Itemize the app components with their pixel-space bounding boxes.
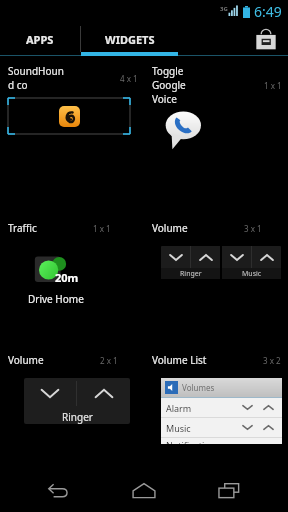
staticText: Volume (152, 221, 188, 235)
staticText: Volume (8, 353, 44, 367)
staticText: 6:49 (254, 2, 282, 21)
button[interactable] (222, 246, 251, 268)
button[interactable]: Shop (244, 22, 288, 56)
staticText: 1 x 1 (264, 80, 282, 91)
staticText: Music (166, 422, 191, 434)
staticText: 4 x 1 (120, 73, 138, 84)
button[interactable]: APPS (0, 22, 80, 56)
button[interactable]: Volume (0, 353, 144, 468)
button[interactable]: Alarm (161, 398, 282, 417)
staticText: Notifications (166, 439, 220, 444)
button[interactable]: WIDGETS (81, 22, 178, 56)
staticText: Music (242, 269, 262, 279)
button[interactable] (24, 378, 76, 409)
button[interactable]: Volume (144, 221, 288, 353)
staticText: 1 x 1 (93, 223, 111, 234)
staticText: Alarm (166, 402, 192, 414)
staticText: 2 x 1 (100, 355, 118, 366)
button[interactable]: Volume List (144, 353, 288, 468)
button[interactable] (191, 246, 220, 268)
staticText: Traffic (8, 221, 37, 235)
button[interactable] (77, 378, 130, 409)
button[interactable] (252, 246, 281, 268)
staticText: 3 x 1 (244, 223, 262, 234)
staticText: Toggle Google Voice (152, 64, 208, 106)
button[interactable]: Back (30, 468, 86, 512)
staticText: 3G (220, 5, 228, 13)
button[interactable] (161, 246, 190, 268)
staticText: APPS (26, 32, 54, 47)
button[interactable]: Traffic (0, 221, 144, 353)
button[interactable]: SoundHound co (0, 64, 144, 207)
staticText: 20m (55, 270, 79, 285)
staticText: WIDGETS (105, 32, 155, 47)
staticText: 3 x 2 (263, 355, 281, 366)
button[interactable]: Music (161, 418, 282, 437)
staticText: Ringer (180, 269, 202, 279)
staticText: Drive Home (28, 292, 84, 306)
button[interactable]: Home (116, 468, 172, 512)
button[interactable]: Toggle Google Voice (144, 64, 288, 221)
staticText: Ringer (62, 410, 93, 424)
button[interactable]: Recent apps (202, 468, 258, 512)
staticText: SoundHound co (8, 64, 64, 92)
staticText: Volume List (152, 353, 207, 367)
staticText: Volumes (182, 382, 215, 393)
